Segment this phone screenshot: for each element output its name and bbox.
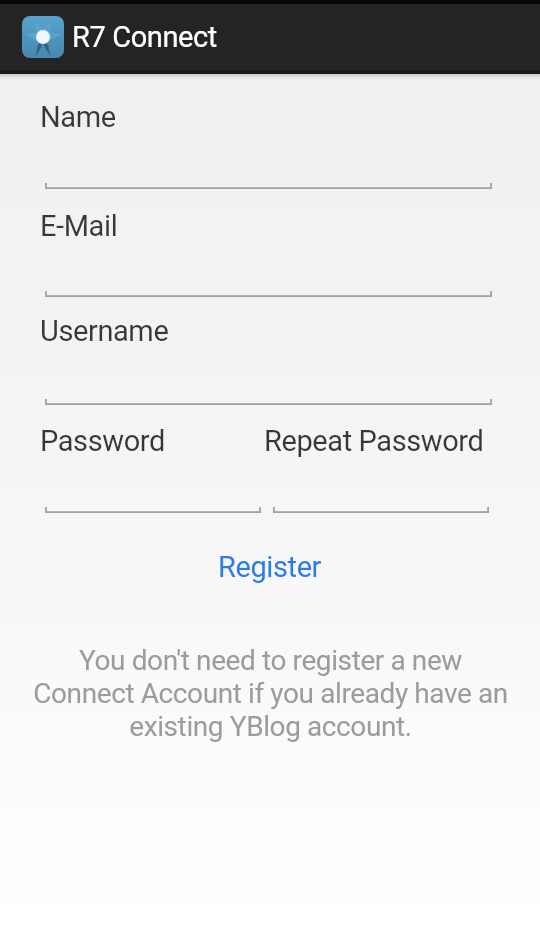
- staticText: Repeat Password: [264, 424, 484, 458]
- button[interactable]: [273, 507, 489, 513]
- button[interactable]: [45, 291, 492, 297]
- staticText: E-Mail: [40, 209, 118, 243]
- button[interactable]: [45, 507, 261, 513]
- staticText: R7 Connect: [72, 20, 217, 54]
- staticText: Username: [40, 314, 169, 348]
- staticText: You don't need to register a new Connect…: [33, 644, 508, 743]
- staticText: Password: [40, 424, 165, 458]
- staticText: Register: [218, 550, 322, 584]
- button[interactable]: Register: [218, 550, 322, 584]
- button[interactable]: [45, 399, 492, 405]
- button[interactable]: [45, 183, 492, 189]
- staticText: Name: [40, 100, 116, 134]
